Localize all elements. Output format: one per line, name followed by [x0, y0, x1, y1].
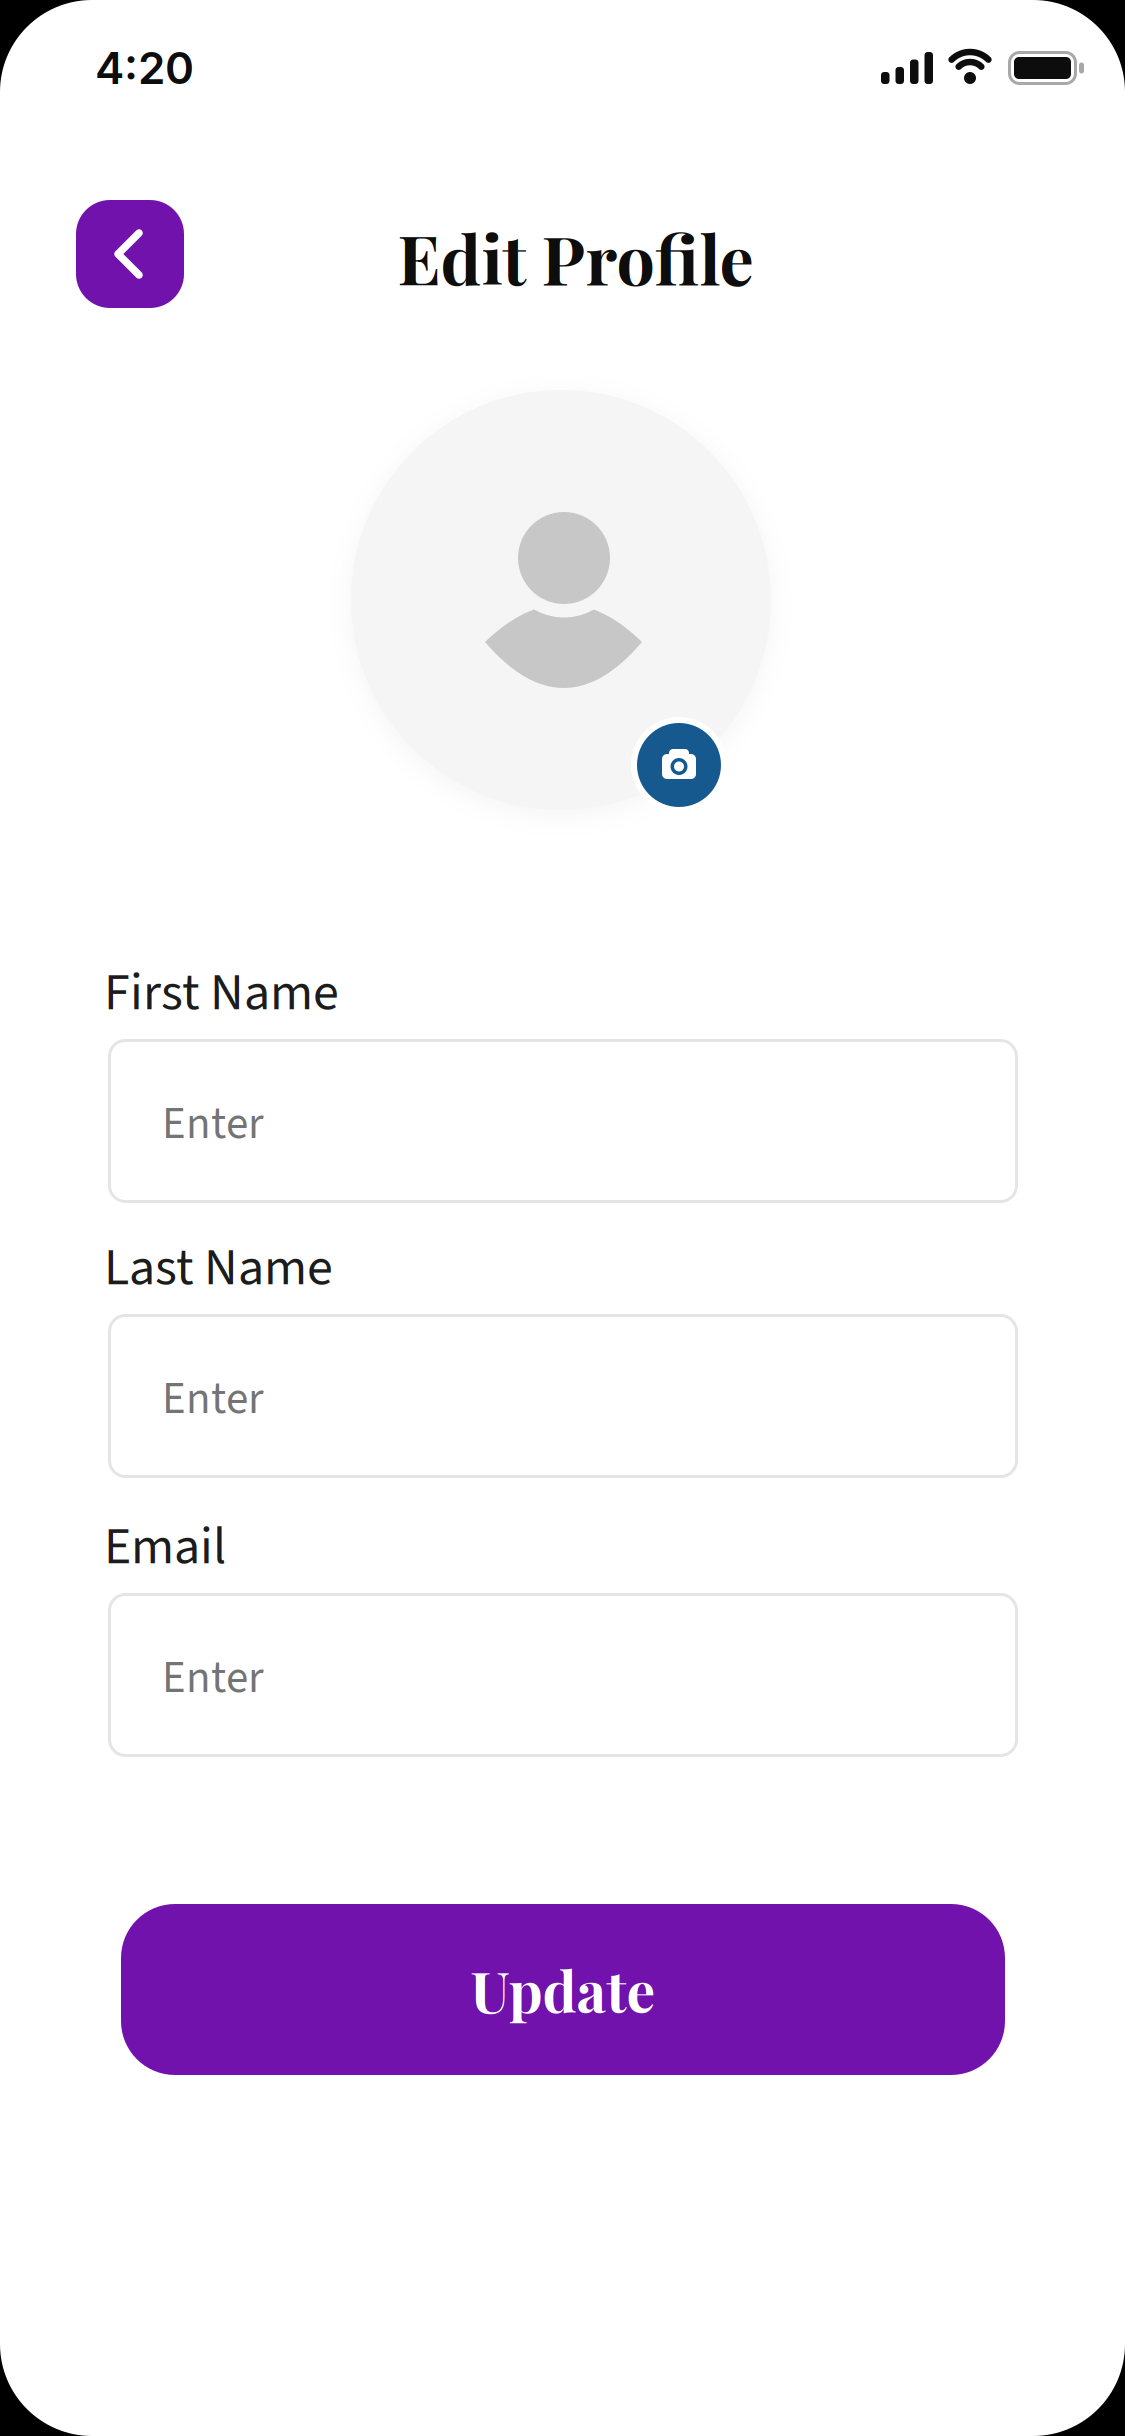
- staticText: Edit Profile: [397, 212, 753, 302]
- button[interactable]: Last Name text field: [108, 1314, 1018, 1478]
- button[interactable]: Update: [121, 1904, 1005, 2075]
- button[interactable]: Back: [76, 200, 184, 308]
- staticText: First Name: [104, 956, 339, 1030]
- staticText: Enter: [162, 1367, 264, 1431]
- button[interactable]: Change photo: [631, 717, 727, 813]
- staticText: Email: [104, 1510, 226, 1584]
- staticText: Enter: [162, 1646, 264, 1710]
- button[interactable]: Email text field: [108, 1593, 1018, 1757]
- button[interactable]: First Name text field: [108, 1039, 1018, 1203]
- staticText: Enter: [162, 1092, 264, 1156]
- staticText: Update: [470, 1951, 655, 2027]
- staticText: 4:20: [95, 41, 194, 95]
- staticText: Last Name: [104, 1231, 333, 1305]
